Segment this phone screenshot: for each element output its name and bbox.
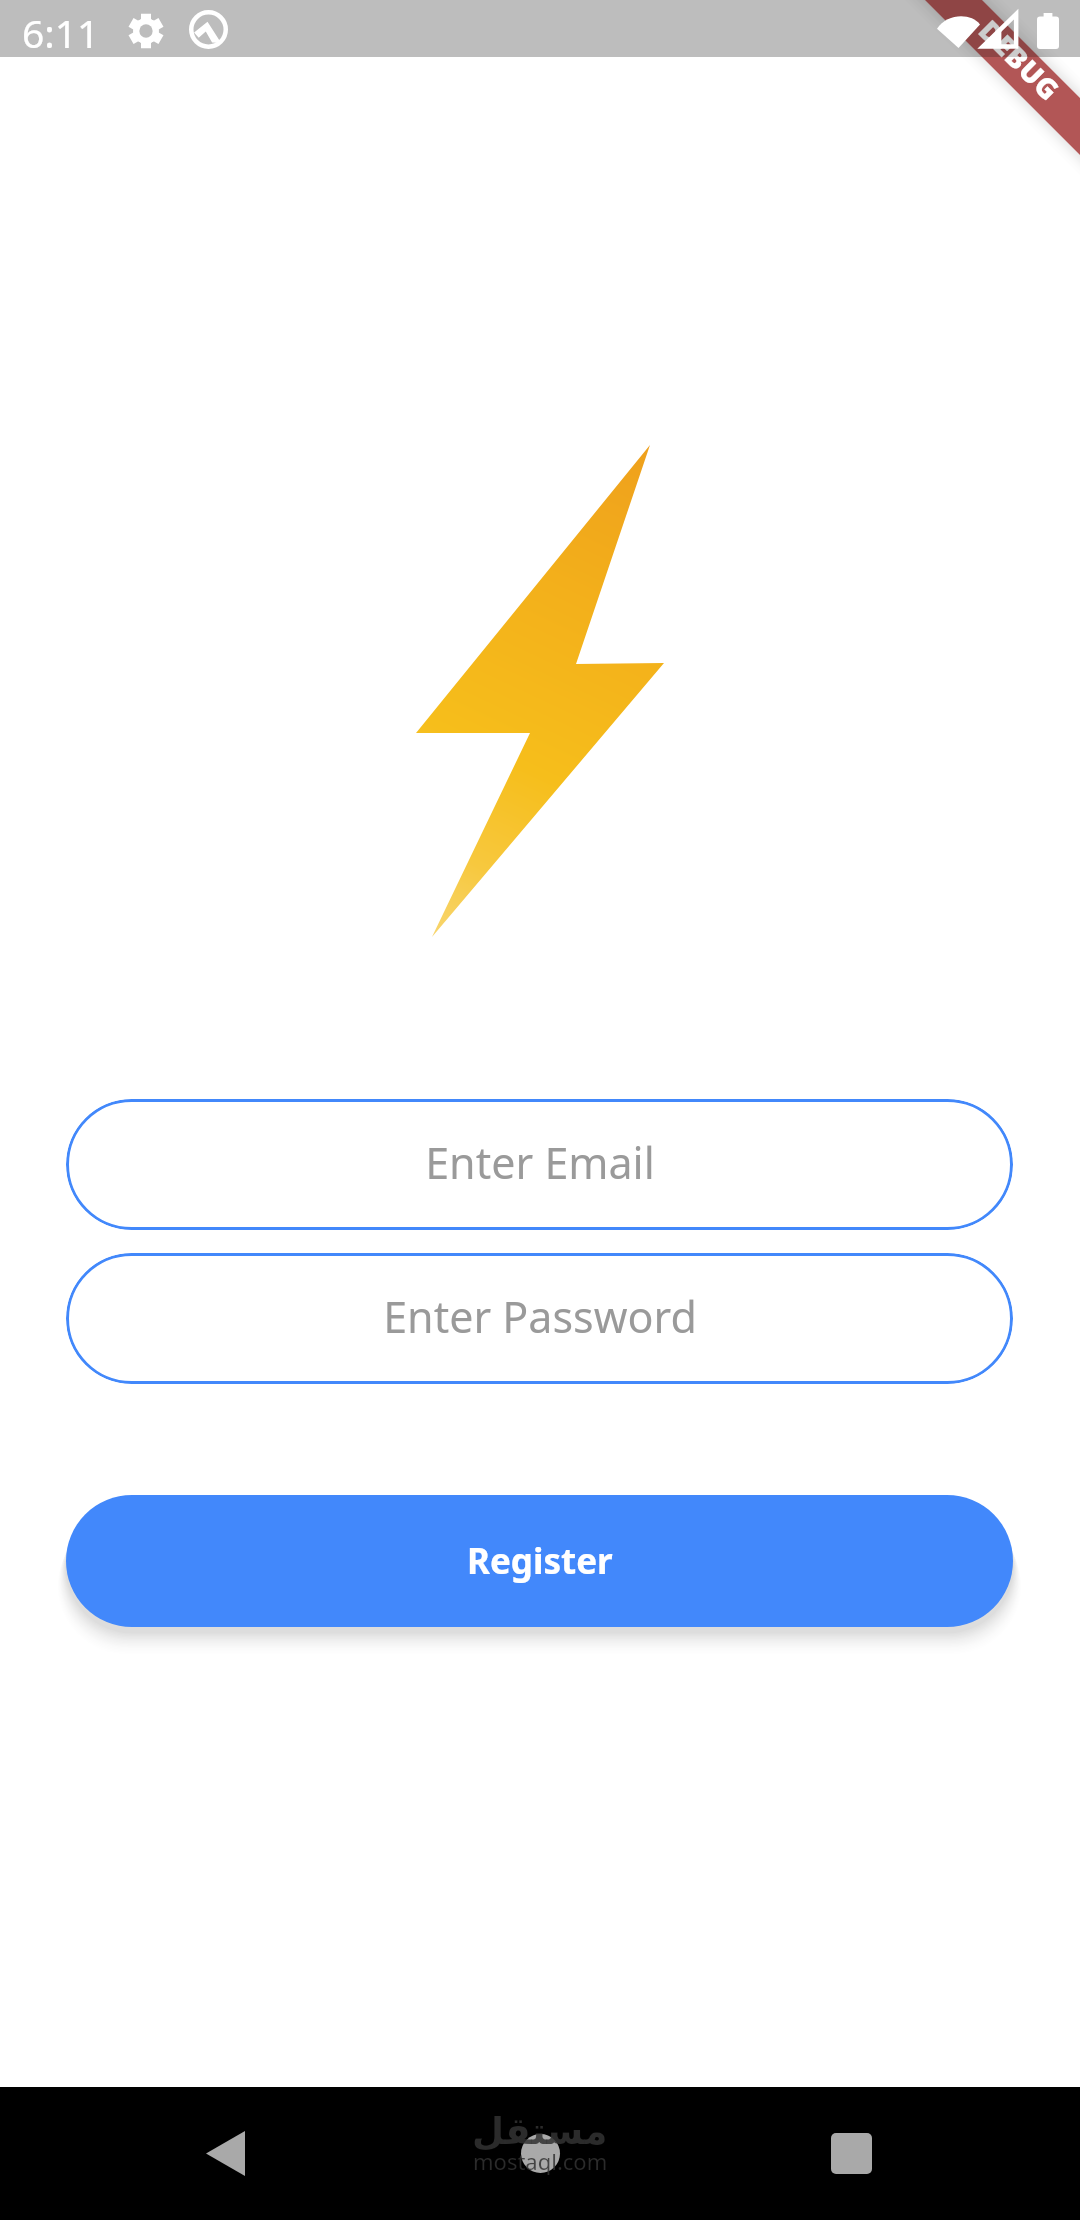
staticText: Enter Password bbox=[383, 1287, 697, 1346]
staticText: مستقل bbox=[472, 2110, 608, 2153]
staticText: mostaql.com bbox=[473, 2146, 608, 2176]
button[interactable]: Recents bbox=[785, 2087, 917, 2220]
button[interactable]: Back bbox=[159, 2087, 291, 2220]
button[interactable]: Home bbox=[474, 2087, 606, 2220]
staticText: Enter Email bbox=[425, 1133, 655, 1192]
button[interactable]: Enter Email bbox=[66, 1099, 1013, 1230]
button[interactable]: Enter Password bbox=[66, 1253, 1013, 1384]
staticText: Register bbox=[467, 1537, 613, 1585]
button[interactable]: Register bbox=[66, 1495, 1013, 1627]
staticText: 6:11 bbox=[22, 6, 100, 59]
staticText: DEBUG bbox=[971, 11, 1069, 109]
